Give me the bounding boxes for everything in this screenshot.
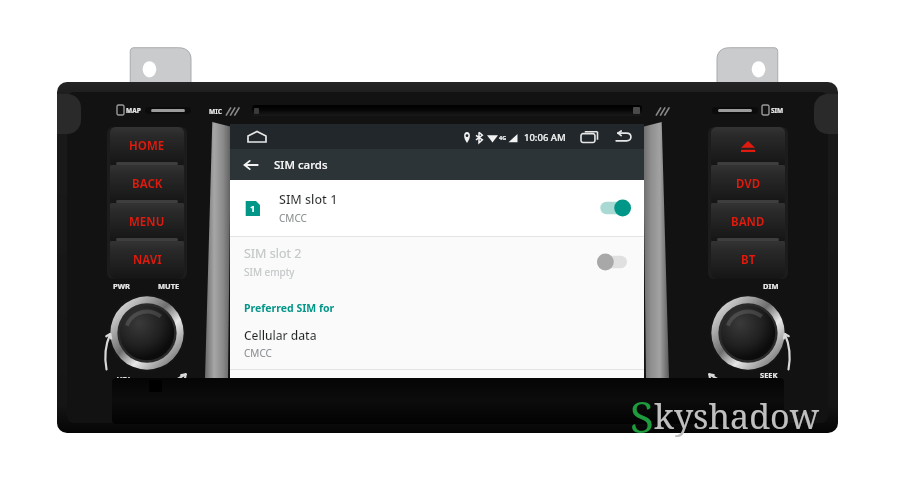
staticText: NAVI (133, 252, 162, 268)
staticText: 4G (499, 134, 507, 141)
button[interactable]: BACK (110, 165, 184, 203)
staticText: 10:06 AM (524, 131, 566, 144)
staticText: Cellular data (244, 327, 317, 343)
staticText: MENU (129, 214, 165, 230)
button[interactable] (596, 252, 632, 272)
button[interactable]: Navigate up (236, 150, 266, 180)
button[interactable]: Calls (230, 370, 644, 385)
staticText: CMCC (279, 211, 307, 225)
staticText: MAP (126, 106, 141, 115)
staticText: PWR (113, 281, 130, 291)
button[interactable] (596, 198, 632, 218)
button[interactable]: Eject (711, 127, 785, 165)
staticText: SIM (771, 106, 784, 115)
button[interactable]: Cellular data (230, 327, 644, 369)
staticText: DVD (736, 176, 761, 192)
staticText: SIM slot 2 (244, 245, 302, 262)
staticText: S (630, 386, 654, 446)
staticText: BAND (731, 214, 765, 230)
button[interactable]: 1 (230, 180, 644, 236)
staticText: SIM slot 1 (279, 191, 338, 208)
staticText: 1 (250, 202, 256, 215)
button[interactable]: Home (240, 124, 274, 149)
button[interactable]: HOME (110, 127, 184, 165)
staticText: CMCC (244, 346, 272, 360)
staticText: HOME (129, 138, 165, 154)
button[interactable]: Recents (576, 126, 602, 148)
button[interactable]: SIM slot 2 (230, 237, 644, 287)
staticText: SIM cards (274, 157, 328, 173)
staticText: kyshadow (654, 393, 819, 439)
staticText: MIC (209, 107, 222, 116)
staticText: MUTE (158, 281, 180, 291)
staticText: BACK (132, 176, 163, 192)
staticText: VOL (117, 374, 132, 384)
staticText: SEEK (760, 370, 778, 380)
staticText: Preferred SIM for (244, 301, 335, 315)
staticText: BT (741, 252, 756, 268)
button[interactable]: Back (610, 126, 636, 148)
button[interactable]: BAND (711, 203, 785, 241)
button[interactable]: DVD (711, 165, 785, 203)
button[interactable]: MENU (110, 203, 184, 241)
staticText: DIM (763, 281, 779, 291)
button[interactable]: NAVI (110, 241, 184, 279)
button[interactable]: Rotary knob (709, 294, 787, 372)
staticText: SIM empty (244, 265, 295, 279)
button[interactable]: BT (711, 241, 785, 279)
button[interactable]: Rotary knob (108, 294, 186, 372)
